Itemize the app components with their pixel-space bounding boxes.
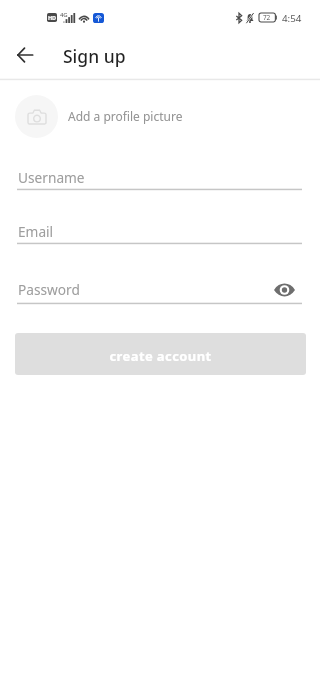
staticText: 72 xyxy=(263,13,271,22)
button[interactable]: Add a profile picture xyxy=(0,94,320,139)
staticText: HD xyxy=(48,14,56,21)
staticText: Add a profile picture xyxy=(68,108,183,124)
staticText: Email xyxy=(18,222,54,241)
staticText: Password xyxy=(18,280,80,299)
staticText: Username xyxy=(18,168,85,187)
staticText: Sign up xyxy=(63,44,126,68)
staticText: 4:54 xyxy=(282,12,302,25)
button[interactable]: create account xyxy=(15,333,306,375)
button[interactable]: Back xyxy=(9,39,41,71)
button[interactable]: Show password xyxy=(270,275,299,304)
staticText: 4G xyxy=(60,11,68,19)
staticText: create account xyxy=(109,347,212,365)
